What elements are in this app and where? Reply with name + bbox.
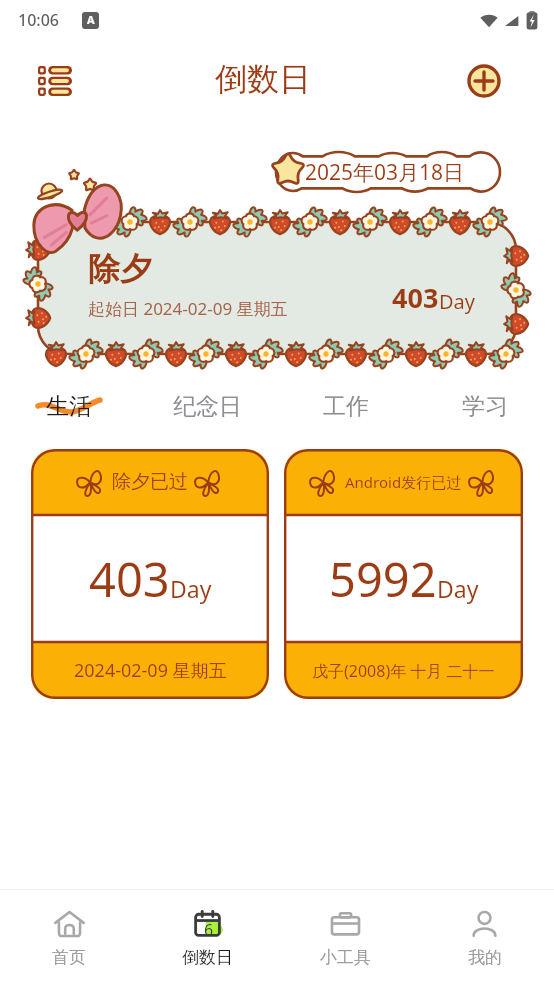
staticText: 6 bbox=[204, 919, 214, 941]
button[interactable]: Android发行已过 bbox=[284, 449, 523, 699]
staticText: Day bbox=[170, 573, 212, 604]
staticText: 除夕 bbox=[88, 249, 152, 289]
staticText: 5992 bbox=[329, 547, 437, 611]
button[interactable]: 纪念日 bbox=[138, 378, 276, 434]
staticText: 学习 bbox=[462, 392, 508, 421]
staticText: Day bbox=[437, 573, 479, 604]
button[interactable]: 工作 bbox=[276, 378, 415, 434]
button[interactable]: 首页 bbox=[0, 890, 138, 986]
button[interactable]: 我的 bbox=[415, 890, 554, 986]
staticText: Day bbox=[439, 288, 476, 315]
staticText: A bbox=[87, 12, 95, 27]
staticText: 起始日 2024-02-09 星期五 bbox=[88, 297, 288, 320]
staticText: 倒数日 bbox=[215, 59, 311, 99]
staticText: 403 bbox=[89, 547, 170, 611]
button[interactable]: 学习 bbox=[415, 378, 554, 434]
button[interactable]: Menu bbox=[29, 55, 81, 107]
button[interactable]: 小工具 bbox=[276, 890, 415, 986]
staticText: 2024-02-09 星期五 bbox=[74, 658, 227, 683]
staticText: 除夕已过 bbox=[112, 470, 188, 494]
button[interactable]: 除夕已过 bbox=[31, 449, 269, 699]
button[interactable]: 6 bbox=[138, 890, 276, 986]
staticText: 10:06 bbox=[18, 9, 59, 31]
staticText: 生活 bbox=[46, 392, 92, 421]
staticText: 2025年03月18日 bbox=[305, 158, 465, 187]
button[interactable]: Add bbox=[461, 58, 507, 104]
button[interactable]: 生活 bbox=[0, 378, 138, 434]
staticText: 倒数日 bbox=[182, 947, 233, 968]
staticText: 首页 bbox=[52, 947, 86, 968]
staticText: 我的 bbox=[468, 947, 502, 968]
staticText: 工作 bbox=[323, 392, 369, 421]
staticText: 小工具 bbox=[320, 947, 371, 968]
staticText: 纪念日 bbox=[173, 392, 242, 421]
staticText: 403 bbox=[392, 279, 439, 316]
staticText: Android发行已过 bbox=[345, 472, 462, 492]
staticText: 戊子(2008)年 十月 二十一 bbox=[312, 660, 495, 682]
